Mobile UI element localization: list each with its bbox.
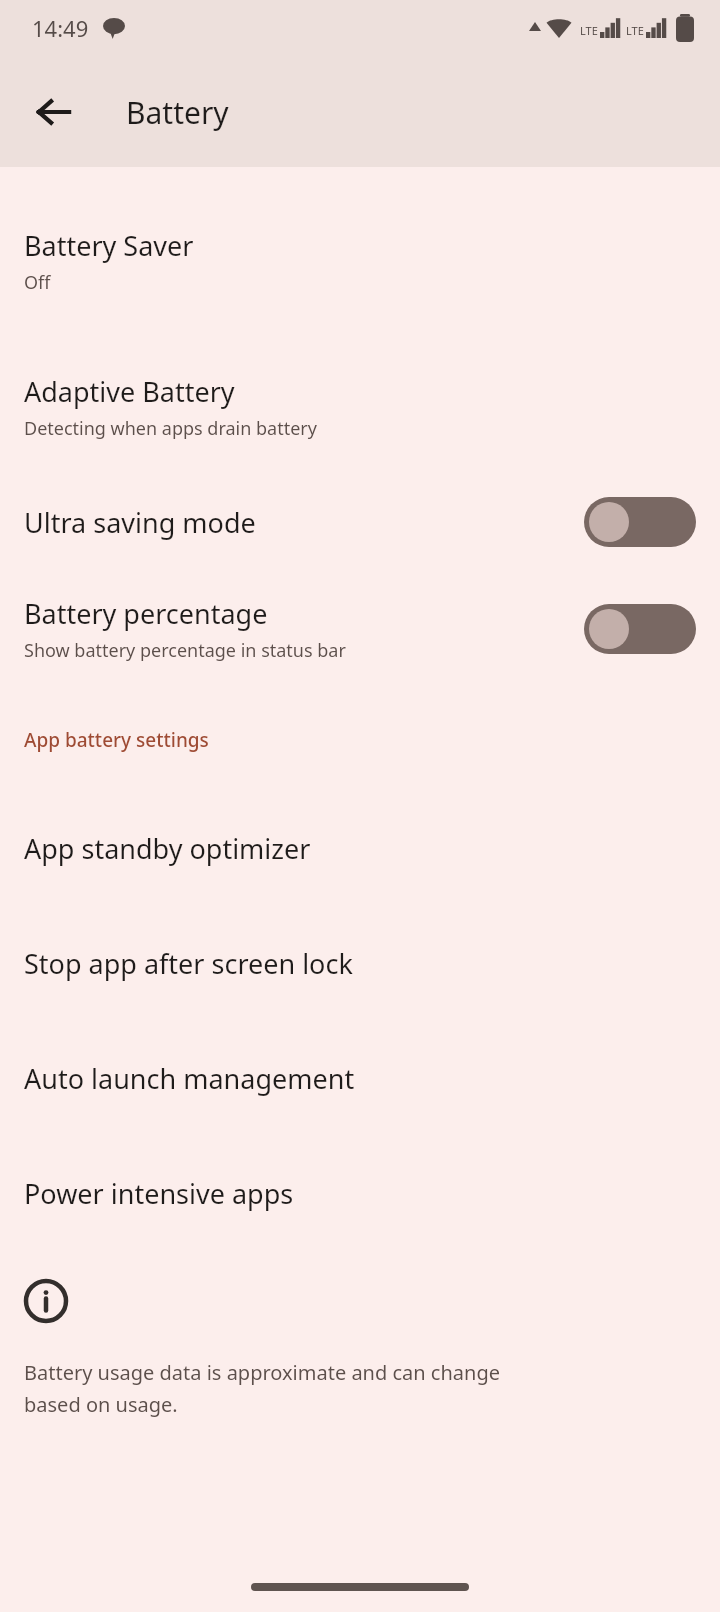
button[interactable]: Auto launch management <box>0 1021 720 1136</box>
staticText: LTE <box>580 23 598 38</box>
button[interactable]: App standby optimizer <box>0 791 720 906</box>
staticText: LTE <box>626 23 644 38</box>
staticText: Adaptive Battery <box>24 373 235 410</box>
staticText: Battery Saver <box>24 227 194 264</box>
button[interactable]: Toggle <box>584 604 696 654</box>
staticText: Auto launch management <box>24 1060 355 1097</box>
button[interactable]: Battery Saver <box>0 223 720 299</box>
button[interactable]: Adaptive Battery <box>0 369 720 445</box>
staticText: 14:49 <box>32 13 89 43</box>
staticText: Battery percentage <box>24 595 268 632</box>
button[interactable]: Toggle <box>584 497 696 547</box>
staticText: Off <box>24 270 51 295</box>
staticText: App standby optimizer <box>24 830 311 867</box>
staticText: Detecting when apps drain battery <box>24 416 317 441</box>
staticText: Battery usage data is approximate and ca… <box>24 1359 500 1418</box>
button[interactable]: Ultra saving mode <box>0 489 720 555</box>
button[interactable]: Battery percentage <box>0 587 720 671</box>
staticText: Power intensive apps <box>24 1175 294 1212</box>
button[interactable]: Power intensive apps <box>0 1136 720 1251</box>
staticText: Ultra saving mode <box>24 504 256 541</box>
staticText: App battery settings <box>24 727 209 753</box>
staticText: Battery <box>126 92 229 133</box>
staticText: Stop app after screen lock <box>24 945 353 982</box>
button[interactable]: Back <box>18 76 90 148</box>
button[interactable]: Stop app after screen lock <box>0 906 720 1021</box>
staticText: Show battery percentage in status bar <box>24 638 346 663</box>
